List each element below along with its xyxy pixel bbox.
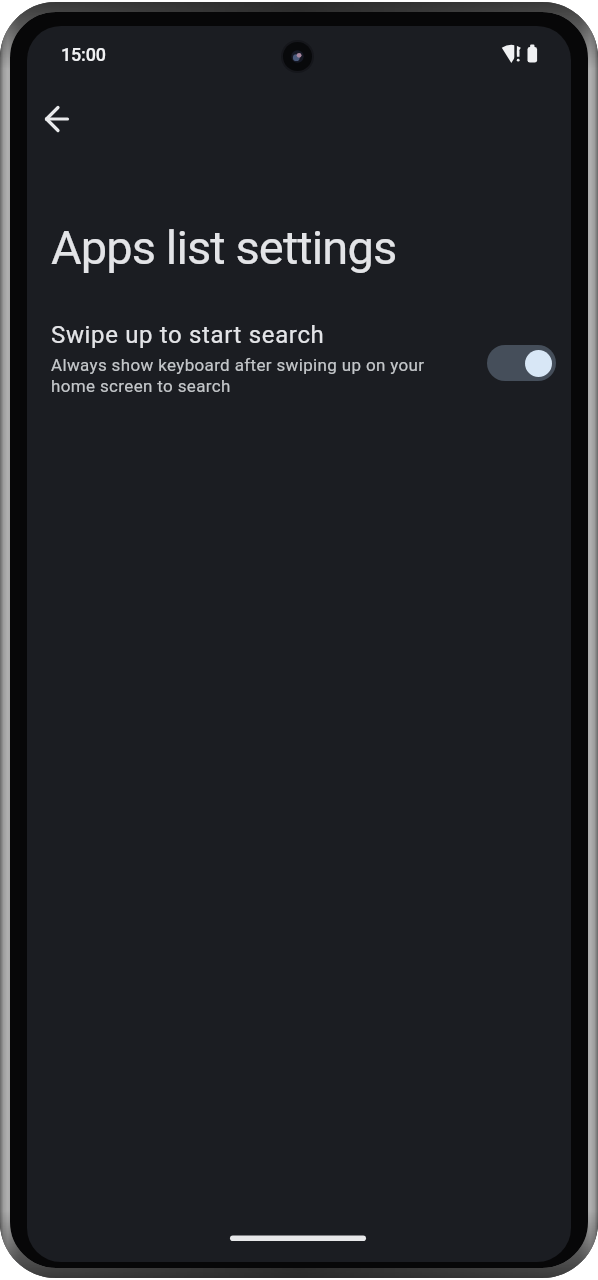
- button[interactable]: [487, 345, 556, 381]
- button[interactable]: [30, 92, 84, 146]
- staticText: Always show keyboard after swiping up on…: [51, 355, 471, 396]
- staticText: Apps list settings: [51, 220, 397, 275]
- button[interactable]: Swipe up to start search: [27, 321, 571, 441]
- staticText: Swipe up to start search: [51, 321, 325, 349]
- staticText: 15:00: [61, 44, 106, 65]
